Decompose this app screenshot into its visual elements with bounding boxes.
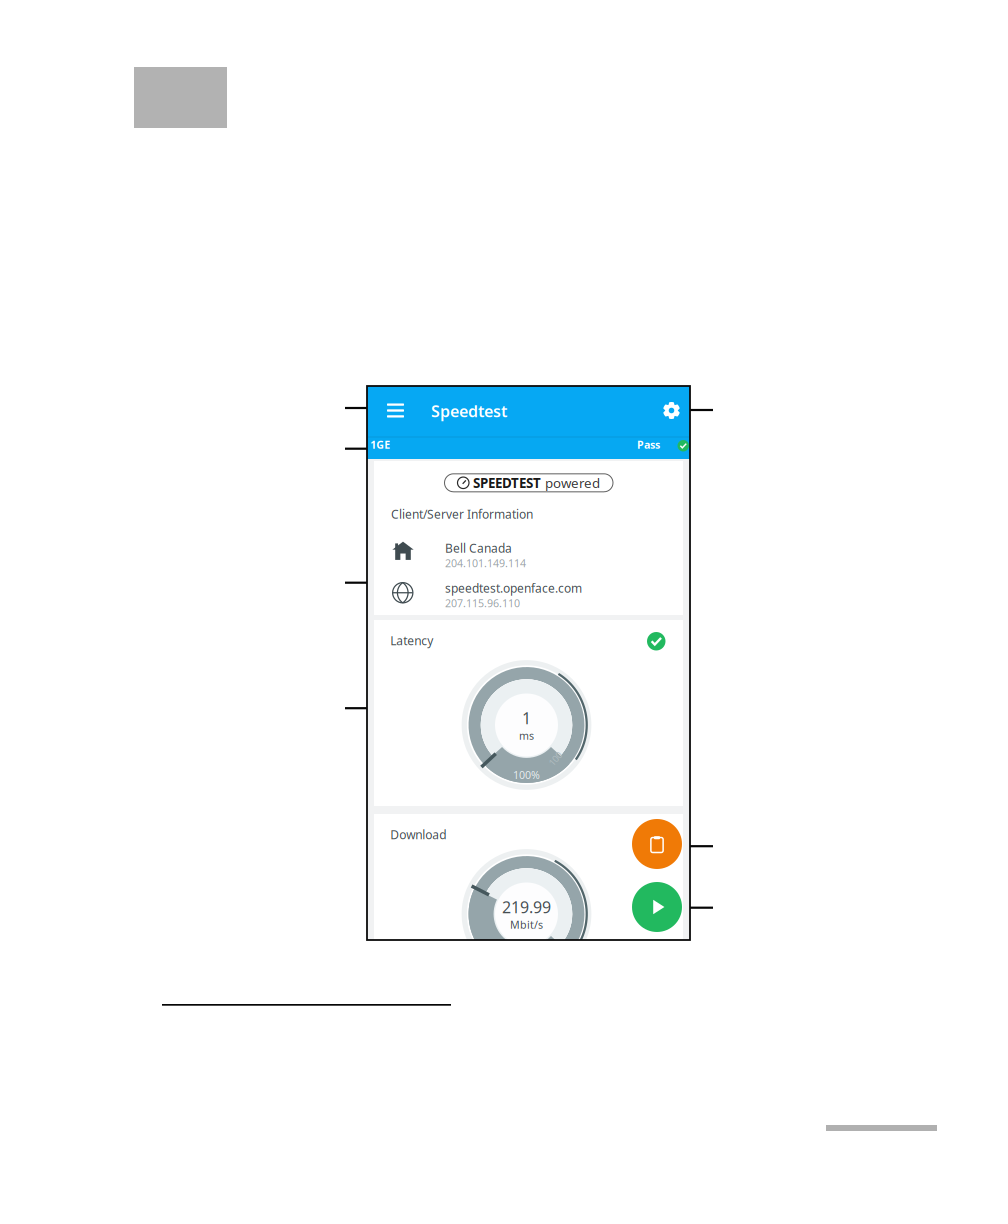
staticText: 100 <box>548 753 563 765</box>
staticText: 204.101.149.114 <box>445 556 526 570</box>
staticText: Pass <box>637 438 660 452</box>
staticText: 100% <box>513 768 540 782</box>
staticText: 219.99 <box>502 896 551 917</box>
staticText: 1 <box>522 707 531 728</box>
staticText: 207.115.96.110 <box>445 596 520 610</box>
staticText: Speedtest <box>431 400 507 422</box>
staticText: Bell Canada <box>445 540 512 556</box>
button[interactable]: Start test <box>632 882 682 932</box>
button[interactable]: Menu <box>378 393 412 427</box>
staticText: speedtest.openface.com <box>445 580 582 596</box>
staticText: powered <box>545 474 600 492</box>
staticText: Latency <box>390 632 433 648</box>
staticText: Client/Server Information <box>391 506 533 522</box>
staticText: 1GE <box>370 438 390 452</box>
staticText: Mbit/s <box>510 917 543 932</box>
staticText: SPEEDTEST <box>473 474 541 492</box>
button[interactable]: Copy results <box>632 819 682 869</box>
button[interactable]: Settings <box>654 393 688 427</box>
staticText: Download <box>390 826 446 842</box>
staticText: ms <box>519 728 534 743</box>
